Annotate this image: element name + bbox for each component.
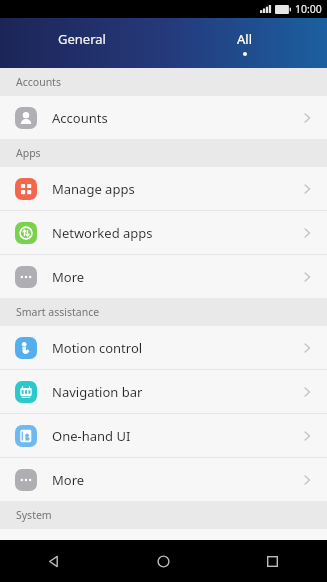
staticText: Motion control [52, 339, 143, 357]
button[interactable]: Back [0, 540, 109, 582]
button[interactable]: Navigation bar [0, 370, 327, 413]
button[interactable]: All [163, 18, 327, 68]
staticText: One-hand UI [52, 427, 131, 445]
button[interactable]: Accounts [0, 96, 327, 139]
staticText: Navigation bar [52, 383, 143, 401]
staticText: More [52, 268, 85, 286]
staticText: General [58, 30, 106, 48]
staticText: 10:00 [295, 2, 322, 16]
button[interactable]: Recents [218, 540, 327, 582]
button[interactable]: General [0, 18, 163, 68]
staticText: Accounts [16, 75, 61, 89]
staticText: All [237, 30, 253, 48]
staticText: Accounts [52, 109, 108, 127]
staticText: Networked apps [52, 224, 153, 242]
staticText: Manage apps [52, 180, 135, 198]
button[interactable]: More [0, 255, 327, 298]
button[interactable]: Manage apps [0, 167, 327, 210]
button[interactable]: Home [109, 540, 218, 582]
staticText: Apps [16, 146, 41, 160]
button[interactable]: Motion control [0, 326, 327, 369]
button[interactable]: One-hand UI [0, 414, 327, 457]
staticText: Smart assistance [16, 305, 100, 319]
staticText: More [52, 471, 85, 489]
button[interactable]: More [0, 458, 327, 501]
staticText: System [16, 508, 52, 522]
button[interactable]: Networked apps [0, 211, 327, 254]
